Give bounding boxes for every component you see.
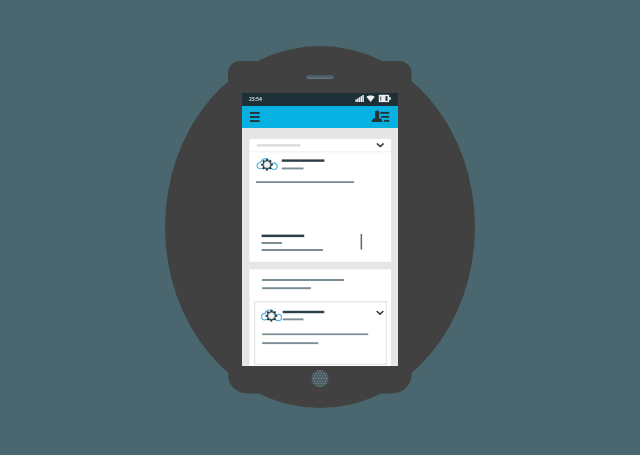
button[interactable]: Open navigation menu bbox=[244, 107, 264, 127]
button[interactable]: Cloud settings item bbox=[253, 302, 387, 362]
button[interactable]: Cloud settings item bbox=[250, 152, 391, 262]
button[interactable]: Contacts bbox=[369, 107, 394, 127]
button[interactable]: Expand section bbox=[250, 139, 391, 152]
button[interactable]: Home bbox=[311, 369, 329, 387]
staticText: 23:54 bbox=[249, 96, 262, 103]
